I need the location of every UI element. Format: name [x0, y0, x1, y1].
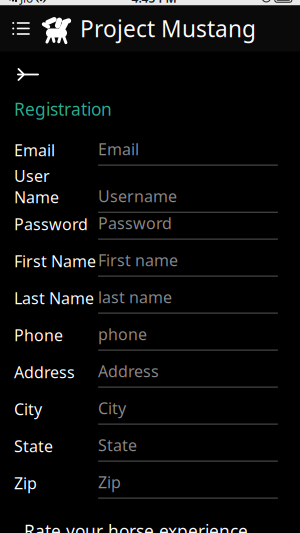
- button[interactable]: Password: [0, 207, 300, 244]
- button[interactable]: Menu: [4, 5, 38, 51]
- staticText: Rate your horse experience: [24, 519, 248, 533]
- button[interactable]: First Name: [0, 244, 300, 281]
- staticText: State: [14, 435, 53, 457]
- button[interactable]: Back: [8, 59, 48, 89]
- staticText: phone: [98, 323, 147, 345]
- button[interactable]: User Name: [0, 170, 300, 207]
- staticText: Registration: [14, 97, 112, 120]
- staticText: 4:45 PM: [131, 0, 176, 6]
- staticText: Username: [98, 185, 177, 207]
- staticText: Address: [98, 360, 159, 382]
- staticText: User Name: [14, 165, 59, 208]
- button[interactable]: Last Name: [0, 281, 300, 318]
- button[interactable]: Email: [0, 133, 300, 170]
- staticText: City: [98, 397, 126, 419]
- staticText: Last Name: [14, 287, 94, 309]
- staticText: First Name: [14, 250, 96, 272]
- staticText: City: [14, 398, 42, 420]
- staticText: First name: [98, 249, 178, 271]
- staticText: Email: [14, 139, 55, 161]
- staticText: Address: [14, 361, 75, 383]
- button[interactable]: Zip: [0, 466, 300, 503]
- staticText: Jio: [20, 0, 33, 6]
- staticText: State: [98, 434, 137, 456]
- staticText: Project Mustang: [80, 13, 256, 43]
- button[interactable]: Address: [0, 355, 300, 392]
- button[interactable]: Phone: [0, 318, 300, 355]
- button[interactable]: City: [0, 392, 300, 429]
- staticText: last name: [98, 286, 172, 308]
- staticText: Email: [98, 138, 139, 160]
- staticText: Password: [98, 212, 172, 234]
- staticText: Phone: [14, 324, 63, 346]
- staticText: Password: [14, 213, 88, 235]
- staticText: Zip: [98, 471, 121, 493]
- staticText: Zip: [14, 472, 37, 494]
- button[interactable]: State: [0, 429, 300, 466]
